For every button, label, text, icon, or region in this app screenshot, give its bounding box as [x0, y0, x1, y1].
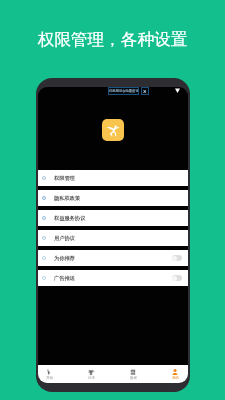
button[interactable]: Close	[141, 87, 149, 95]
staticText: 数据	[130, 376, 137, 380]
button[interactable]: 为你推荐	[38, 250, 188, 266]
staticText: 为你推荐	[54, 255, 75, 262]
button[interactable]: 我的	[166, 367, 184, 383]
button[interactable]: 权限管理	[38, 170, 188, 186]
staticText: 用户协议	[54, 235, 75, 242]
button[interactable]: 数据	[124, 367, 142, 383]
staticText: 已禁用后台电量查询	[109, 89, 139, 93]
button[interactable]: 记录	[82, 367, 100, 383]
staticText: 开始	[46, 376, 53, 380]
staticText: 我的	[172, 376, 179, 380]
staticText: 权限管理	[54, 175, 75, 182]
button[interactable]: 权益服务协议	[38, 210, 188, 226]
staticText: 权益服务协议	[54, 215, 86, 222]
staticText: 记录	[88, 376, 95, 380]
button[interactable]: Toggle 广告推送	[172, 275, 182, 281]
button[interactable]: 隐私权政策	[38, 190, 188, 206]
button[interactable]: 用户协议	[38, 230, 188, 246]
button[interactable]: App icon	[102, 119, 124, 141]
button[interactable]: 广告推送	[38, 270, 188, 286]
button[interactable]: Toggle 为你推荐	[172, 255, 182, 261]
staticText: ✕	[143, 89, 147, 94]
staticText: 权限管理，各种设置	[0, 29, 225, 50]
button[interactable]: 开始	[40, 367, 58, 383]
staticText: 广告推送	[54, 275, 75, 282]
staticText: 隐私权政策	[54, 195, 80, 202]
